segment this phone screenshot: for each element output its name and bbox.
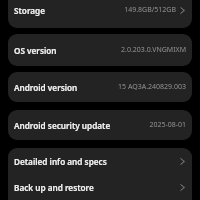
staticText: 149.8GB/512GB <box>124 5 176 15</box>
staticText: Back up and restore <box>14 182 94 193</box>
button[interactable]: Android security update <box>8 110 192 140</box>
staticText: Android security update <box>14 120 111 131</box>
staticText: 15 AQ3A.240829.003 <box>118 82 186 92</box>
staticText: 2.0.203.0.VNGMIXM <box>121 45 186 55</box>
button[interactable]: Back up and restore <box>8 175 192 200</box>
other: Detailed info and specs <box>179 156 186 167</box>
button[interactable]: Android version <box>8 72 192 102</box>
button[interactable]: OS version <box>8 34 192 66</box>
staticText: Detailed info and specs <box>14 156 107 167</box>
other: Storage <box>179 5 186 16</box>
staticText: Storage <box>14 5 45 16</box>
button[interactable]: Detailed info and specs <box>8 148 192 175</box>
staticText: 2025-08-01 <box>149 120 186 130</box>
staticText: OS version <box>14 45 57 56</box>
button[interactable]: Storage <box>8 0 192 24</box>
other: Back up and restore <box>179 182 186 193</box>
staticText: Android version <box>14 82 78 93</box>
